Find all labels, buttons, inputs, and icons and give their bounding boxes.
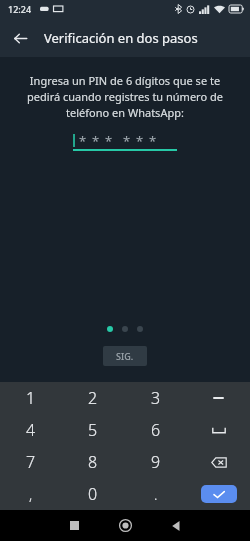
staticText: Verificación en dos pasos [44, 29, 198, 47]
button[interactable]: 0 [62, 478, 124, 510]
button[interactable]: 2 [62, 382, 124, 414]
staticText: 9 [151, 451, 161, 473]
staticText: SIG. [116, 350, 134, 362]
button[interactable]: Space [187, 414, 250, 446]
staticText: * [149, 132, 157, 149]
button[interactable]: 4 [0, 414, 62, 446]
button[interactable]: Home [105, 510, 145, 541]
button[interactable]: Back [156, 510, 196, 541]
staticText: * [105, 132, 113, 149]
button[interactable]: Recent apps [54, 510, 94, 541]
staticText: 1 [26, 387, 36, 409]
staticText: * [123, 132, 131, 149]
button[interactable]: SIG. [103, 346, 147, 366]
staticText: , [29, 485, 33, 504]
staticText: 2 [88, 387, 98, 409]
staticText: . [154, 485, 158, 504]
button[interactable]: 7 [0, 446, 62, 478]
staticText: 3 [151, 387, 161, 409]
button[interactable]: 9 [124, 446, 187, 478]
button[interactable]: 1 [0, 382, 62, 414]
button[interactable]: Enter [187, 478, 250, 510]
staticText: Ingresa un PIN de 6 dígitos que se te pe… [20, 73, 230, 120]
button[interactable]: 8 [62, 446, 124, 478]
button[interactable]: Backspace [187, 446, 250, 478]
button[interactable]: , [0, 478, 62, 510]
staticText: 6 [151, 419, 161, 441]
button[interactable]: Minus [187, 382, 250, 414]
button[interactable]: 5 [62, 414, 124, 446]
button[interactable]: Back [6, 24, 34, 52]
staticText: 8 [88, 451, 98, 473]
button[interactable]: 3 [124, 382, 187, 414]
staticText: * [79, 132, 87, 149]
staticText: * [92, 132, 100, 149]
staticText: 7 [26, 451, 36, 473]
button[interactable]: . [124, 478, 187, 510]
staticText: 12:24 [8, 3, 32, 15]
staticText: 0 [88, 483, 98, 505]
staticText: 4 [26, 419, 36, 441]
staticText: * [136, 132, 144, 149]
button[interactable]: 6 [124, 414, 187, 446]
staticText: 5 [88, 419, 98, 441]
